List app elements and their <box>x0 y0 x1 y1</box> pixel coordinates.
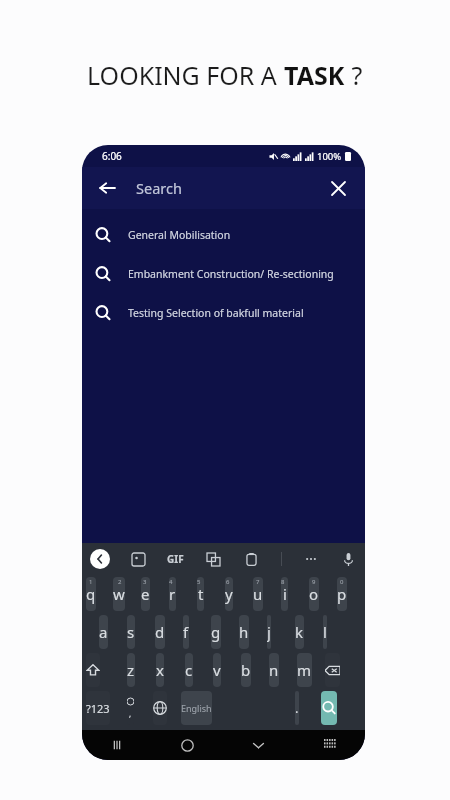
button[interactable]: m <box>297 653 312 687</box>
button[interactable]: Hide keyboard <box>294 730 365 760</box>
button[interactable]: Voice input <box>340 551 357 568</box>
button[interactable]: Clipboard <box>243 551 260 568</box>
staticText: 3 <box>143 578 147 586</box>
staticText: ? <box>345 58 363 92</box>
button[interactable]: w <box>113 577 125 611</box>
staticText: c <box>185 660 193 680</box>
staticText: h <box>239 622 249 642</box>
button[interactable] <box>321 691 337 725</box>
button[interactable]: s <box>127 615 135 649</box>
button[interactable]: General Mobilisation <box>82 215 365 254</box>
staticText: t <box>198 584 204 604</box>
staticText: g <box>211 622 221 642</box>
button[interactable]: n <box>269 653 279 687</box>
button[interactable]: b <box>241 653 251 687</box>
button[interactable]: Recents <box>82 730 152 760</box>
staticText: p <box>337 584 347 604</box>
button[interactable]: Back <box>92 173 122 203</box>
button[interactable]: a <box>99 615 108 649</box>
staticText: i <box>283 584 287 604</box>
button[interactable]: Sticker <box>130 551 147 568</box>
staticText: u <box>253 584 263 604</box>
staticText: Testing Selection of bakfull material <box>128 306 304 320</box>
staticText: f <box>183 622 189 642</box>
button[interactable]: r <box>169 577 176 611</box>
staticText: TASK <box>284 58 345 92</box>
staticText: x <box>156 660 164 680</box>
button[interactable] <box>325 653 340 687</box>
staticText: 5 <box>197 578 201 586</box>
button[interactable]: Back <box>223 730 294 760</box>
staticText: b <box>241 660 251 680</box>
staticText: k <box>295 622 304 642</box>
button[interactable]: GIF <box>167 552 184 566</box>
button[interactable]: Embankment Construction/ Re-sectioning <box>82 254 365 293</box>
staticText: GIF <box>167 552 184 566</box>
staticText: j <box>267 622 271 642</box>
staticText: 8 <box>281 578 285 586</box>
button[interactable]: d <box>155 615 165 649</box>
staticText: o <box>309 584 319 604</box>
button[interactable]: Home <box>152 730 223 760</box>
button[interactable]: e <box>141 577 150 611</box>
button[interactable]: g <box>211 615 221 649</box>
button[interactable]: t <box>197 577 204 611</box>
staticText: a <box>99 622 108 642</box>
button[interactable]: Testing Selection of bakfull material <box>82 293 365 332</box>
staticText: y <box>225 584 233 604</box>
button[interactable]: o <box>309 577 319 611</box>
staticText: LOOKING FOR A <box>87 58 284 92</box>
button[interactable] <box>86 653 100 687</box>
button[interactable]: . <box>295 691 299 725</box>
button[interactable]: , <box>127 691 134 725</box>
staticText: , <box>129 708 132 719</box>
staticText: d <box>155 622 165 642</box>
button[interactable]: x <box>156 653 164 687</box>
button[interactable]: i <box>281 577 288 611</box>
button[interactable]: y <box>225 577 233 611</box>
staticText: Search <box>136 178 182 198</box>
button[interactable]: c <box>185 653 193 687</box>
button[interactable]: j <box>267 615 271 649</box>
staticText: v <box>213 660 221 680</box>
button[interactable]: l <box>323 615 327 649</box>
staticText: r <box>169 584 176 604</box>
staticText: ?123 <box>86 701 110 716</box>
staticText: 100% <box>317 150 342 163</box>
staticText: Embankment Construction/ Re-sectioning <box>128 267 334 281</box>
staticText: 2 <box>118 578 122 586</box>
button[interactable]: k <box>295 615 304 649</box>
button[interactable]: v <box>213 653 221 687</box>
button[interactable]: Expand toolbar <box>90 549 110 569</box>
staticText: q <box>86 584 96 604</box>
staticText: 4 <box>169 578 173 586</box>
button[interactable]: Close <box>323 173 353 203</box>
button[interactable]: h <box>239 615 249 649</box>
button[interactable] <box>153 691 167 725</box>
staticText: w <box>113 584 125 604</box>
staticText: s <box>127 622 135 642</box>
button[interactable]: q <box>86 577 96 611</box>
staticText: e <box>141 584 150 604</box>
staticText: 6 <box>226 578 230 586</box>
staticText: l <box>323 622 327 642</box>
staticText: 6:06 <box>102 149 122 163</box>
button[interactable]: English <box>181 691 212 725</box>
button[interactable]: Translate <box>205 551 222 568</box>
staticText: General Mobilisation <box>128 228 231 242</box>
button[interactable]: z <box>127 653 135 687</box>
button[interactable]: ?123 <box>86 691 110 725</box>
staticText: m <box>297 660 312 680</box>
button[interactable]: More <box>303 551 319 567</box>
button[interactable]: u <box>253 577 263 611</box>
button[interactable]: p <box>337 577 347 611</box>
staticText: 7 <box>256 578 260 586</box>
staticText: 1 <box>89 578 93 586</box>
button[interactable]: f <box>183 615 189 649</box>
staticText: English <box>181 702 212 714</box>
staticText: . <box>295 699 299 717</box>
staticText: n <box>269 660 279 680</box>
button[interactable]: Search <box>122 167 323 209</box>
staticText: 0 <box>340 578 344 586</box>
staticText: 9 <box>312 578 316 586</box>
